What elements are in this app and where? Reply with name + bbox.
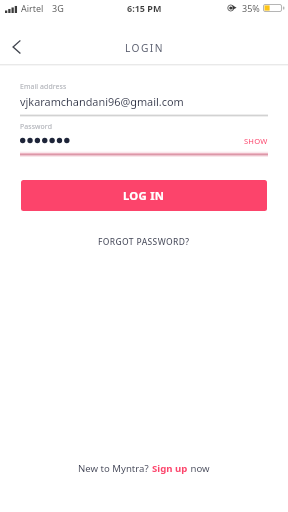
button[interactable]: LOG IN	[21, 180, 267, 211]
staticText: LOG IN	[123, 188, 165, 203]
button[interactable]: Back	[2, 33, 30, 61]
staticText: 3G	[52, 2, 64, 14]
button[interactable]: FORGOT PASSWORD?	[98, 236, 190, 248]
staticText: New to Myntra?	[78, 462, 152, 475]
staticText: SHOW	[244, 136, 268, 146]
staticText: 35%	[242, 2, 260, 14]
staticText: FORGOT PASSWORD?	[98, 236, 190, 248]
button[interactable]: SHOW	[244, 136, 268, 146]
staticText: Email address	[20, 82, 67, 91]
staticText: Airtel	[21, 2, 44, 14]
staticText: Sign up	[152, 462, 188, 475]
button[interactable]: Sign up	[152, 462, 188, 475]
staticText: vjkaramchandani96@gmail.com	[20, 94, 184, 109]
staticText: now	[188, 462, 210, 475]
staticText: LOGIN	[125, 41, 164, 55]
staticText: 6:15 PM	[127, 2, 162, 14]
staticText: Password	[20, 122, 52, 131]
